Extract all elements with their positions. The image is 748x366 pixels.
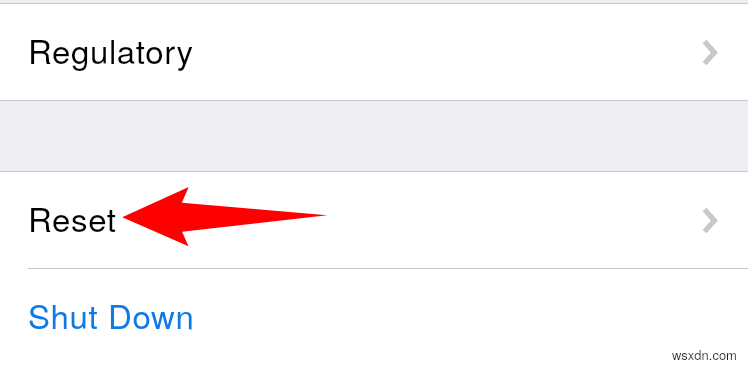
button[interactable]: Reset	[0, 172, 748, 268]
staticText: Shut Down	[28, 291, 195, 338]
other: Open	[702, 207, 717, 234]
other: Open	[702, 39, 717, 66]
staticText: wsxdn.com	[672, 345, 737, 364]
button[interactable]: Shut Down	[0, 269, 748, 366]
staticText: Reset	[28, 194, 117, 241]
button[interactable]: Regulatory	[0, 4, 748, 100]
staticText: Regulatory	[28, 26, 194, 73]
